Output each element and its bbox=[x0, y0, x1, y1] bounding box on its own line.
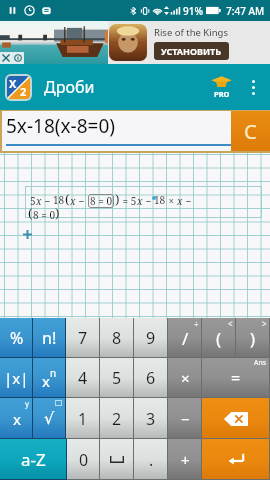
button[interactable]: x bbox=[33, 358, 66, 398]
staticText: > bbox=[262, 318, 267, 329]
staticText: 2 bbox=[20, 84, 27, 99]
staticText: n bbox=[50, 366, 57, 380]
staticText: = 5 bbox=[120, 194, 137, 208]
staticText: □ bbox=[55, 398, 63, 407]
button[interactable]: 7 bbox=[66, 318, 100, 358]
button[interactable]: a-Z bbox=[0, 439, 67, 480]
staticText: |x| bbox=[4, 368, 29, 388]
staticText: 8 = 0 bbox=[33, 208, 55, 222]
staticText: % bbox=[10, 327, 24, 349]
staticText: ( bbox=[28, 204, 33, 222]
staticText: − bbox=[76, 194, 87, 208]
staticText: 7:47 AM bbox=[226, 4, 265, 18]
button[interactable]: УСТАНОВИТЬ bbox=[154, 42, 229, 60]
button[interactable]: + bbox=[168, 439, 202, 480]
button[interactable]: Enter bbox=[202, 439, 270, 480]
staticText: 1 bbox=[78, 408, 88, 430]
button[interactable]: Pro version bbox=[204, 70, 238, 104]
button[interactable]: App icon bbox=[5, 74, 32, 101]
staticText: 6 bbox=[146, 367, 156, 389]
button[interactable]: 6 bbox=[134, 358, 168, 398]
button[interactable]: Space bbox=[100, 439, 134, 480]
staticText: a-Z bbox=[21, 448, 46, 471]
button[interactable]: Clear bbox=[231, 111, 270, 151]
button[interactable]: 0 bbox=[67, 439, 100, 480]
button[interactable]: 3 bbox=[134, 398, 168, 439]
button[interactable]: × bbox=[168, 358, 202, 398]
button[interactable]: x bbox=[0, 398, 33, 439]
button[interactable]: n! bbox=[33, 318, 66, 358]
button[interactable]: ) bbox=[236, 318, 270, 358]
staticText: 2 bbox=[112, 408, 122, 430]
button[interactable]: More options bbox=[240, 74, 266, 100]
staticText: = bbox=[231, 367, 241, 389]
staticText: / bbox=[182, 327, 189, 350]
staticText: x bbox=[70, 194, 76, 208]
staticText: x bbox=[36, 194, 42, 208]
staticText: 9 bbox=[146, 327, 156, 349]
button[interactable]: / bbox=[168, 318, 202, 358]
staticText: x bbox=[13, 409, 21, 429]
staticText: 91% bbox=[183, 4, 203, 18]
staticText: 5 bbox=[112, 367, 122, 389]
button[interactable]: . bbox=[134, 439, 168, 480]
staticText: ) bbox=[115, 190, 120, 208]
staticText: Ans bbox=[254, 358, 267, 368]
staticText: ) bbox=[250, 327, 256, 350]
staticText: − bbox=[143, 194, 154, 208]
staticText: Rise of the Kings bbox=[154, 26, 228, 39]
staticText: x bbox=[177, 194, 183, 208]
staticText: − bbox=[42, 194, 53, 208]
staticText: ) bbox=[55, 204, 60, 222]
staticText: C bbox=[244, 118, 257, 145]
staticText: x bbox=[137, 194, 143, 208]
staticText: ( bbox=[65, 190, 70, 208]
staticText: x bbox=[42, 371, 50, 391]
staticText: X bbox=[9, 76, 17, 91]
button[interactable]: = bbox=[202, 358, 270, 398]
staticText: − bbox=[181, 409, 190, 429]
staticText: 5 bbox=[30, 194, 36, 208]
staticText: 18 bbox=[53, 193, 65, 207]
staticText: 4 bbox=[78, 367, 88, 389]
button[interactable]: 4 bbox=[66, 358, 100, 398]
staticText: × bbox=[181, 368, 190, 388]
staticText: − bbox=[183, 194, 192, 208]
button[interactable]: Ad information bbox=[12, 52, 24, 64]
button[interactable]: 9 bbox=[134, 318, 168, 358]
button[interactable]: ( bbox=[202, 318, 236, 358]
staticText: × bbox=[166, 194, 177, 208]
staticText: 0 bbox=[79, 449, 89, 471]
button[interactable]: 5 bbox=[100, 358, 134, 398]
button[interactable]: 1 bbox=[66, 398, 100, 439]
staticText: n! bbox=[42, 327, 57, 349]
staticText: . bbox=[149, 449, 154, 471]
button[interactable]: √ bbox=[33, 398, 66, 439]
staticText: + bbox=[181, 450, 190, 470]
button[interactable]: Backspace bbox=[202, 398, 270, 439]
button[interactable]: − bbox=[168, 398, 202, 439]
staticText: √ bbox=[44, 409, 55, 428]
staticText: УСТАНОВИТЬ bbox=[161, 45, 222, 57]
staticText: 8 = 0 bbox=[90, 194, 112, 208]
button[interactable]: % bbox=[0, 318, 33, 358]
staticText: < bbox=[228, 318, 233, 329]
staticText: ( bbox=[216, 327, 222, 350]
staticText: 7 bbox=[78, 327, 88, 349]
staticText: PRO bbox=[214, 89, 230, 99]
button[interactable]: 8 bbox=[100, 318, 134, 358]
staticText: 3 bbox=[146, 408, 156, 430]
staticText: 18 bbox=[154, 193, 166, 207]
staticText: 8 bbox=[112, 327, 122, 349]
button[interactable]: Add step bbox=[23, 230, 32, 239]
staticText: 5x-18(x-8=0) bbox=[6, 113, 115, 139]
staticText: y bbox=[25, 398, 30, 409]
button[interactable]: 2 bbox=[100, 398, 134, 439]
staticText: ÷ bbox=[194, 318, 199, 329]
staticText: Дроби bbox=[44, 76, 95, 98]
button[interactable]: Close ad bbox=[0, 52, 12, 64]
button[interactable]: |x| bbox=[0, 358, 33, 398]
